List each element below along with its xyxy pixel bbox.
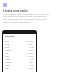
staticText: List (5, 52, 9, 55)
staticText: add button to create a new task with the (3, 15, 47, 18)
staticText: Alert (5, 55, 10, 58)
staticText: title, date and time you want. It will s… (3, 18, 48, 21)
staticText: Color (5, 64, 10, 67)
button[interactable]: Time (5, 46, 34, 49)
staticText: Date (5, 43, 10, 46)
button[interactable]: App icon (3, 3, 7, 7)
staticText: Notes (5, 58, 11, 61)
staticText: up in your list right away. (3, 21, 31, 24)
staticText: Tags (5, 67, 10, 70)
staticText: Buy milk (26, 40, 34, 43)
button[interactable]: Color (5, 64, 34, 67)
staticText: 18:00 (29, 46, 34, 49)
staticText: New task (5, 35, 15, 38)
staticText: Don't forget your tasks ever again. Tap … (3, 13, 49, 16)
staticText: Today (28, 43, 34, 46)
button[interactable]: List (5, 52, 34, 55)
staticText: Blue (30, 64, 34, 67)
staticText: Personal (26, 52, 34, 55)
button[interactable]: Repeat (5, 49, 34, 52)
staticText: 10 min (27, 55, 34, 58)
staticText: Create new tasks (3, 9, 28, 13)
button[interactable]: Title (5, 40, 34, 43)
staticText: Home (28, 67, 34, 70)
button[interactable]: Notes (5, 58, 34, 61)
staticText: High (29, 61, 34, 64)
staticText: Title (5, 40, 9, 43)
staticText: Time (5, 46, 10, 49)
button[interactable]: Priority (5, 61, 34, 64)
button[interactable]: Tags (5, 67, 34, 70)
button[interactable]: Alert (5, 55, 34, 58)
staticText: Repeat (5, 49, 12, 52)
button[interactable]: Date (5, 43, 34, 46)
staticText: Add (30, 58, 34, 61)
staticText: Priority (5, 61, 12, 64)
staticText: Never (28, 49, 34, 52)
